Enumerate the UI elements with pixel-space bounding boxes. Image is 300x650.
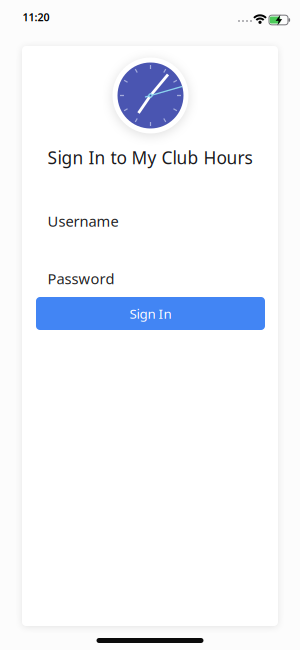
button[interactable]: Sign In [36, 297, 265, 330]
staticText: Username [47, 211, 118, 231]
button[interactable]: Password [36, 263, 265, 293]
staticText: Password [47, 269, 114, 288]
staticText: Sign In to My Club Hours [47, 146, 252, 169]
staticText: Sign In [129, 305, 171, 322]
button[interactable]: Username [36, 206, 265, 236]
staticText: 11:20 [22, 10, 49, 24]
